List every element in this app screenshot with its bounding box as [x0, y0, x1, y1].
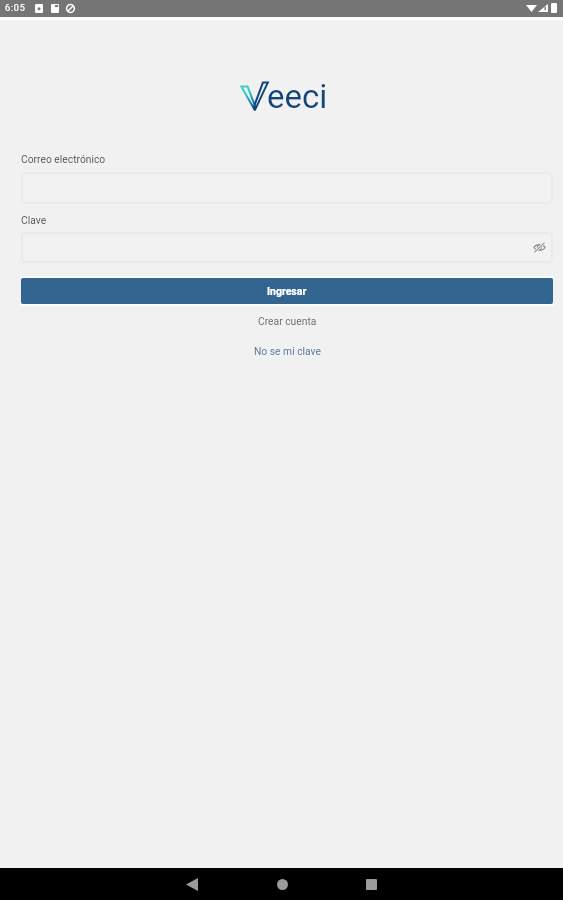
button[interactable]: Mostrar clave — [532, 240, 547, 255]
staticText: Clave — [21, 214, 47, 226]
staticText: Correo electrónico — [21, 153, 106, 165]
button[interactable]: Ingresar — [21, 278, 553, 304]
staticText: 6:05 — [5, 3, 26, 14]
button[interactable]: Mostrar clave — [21, 232, 553, 263]
button[interactable]: Crear cuenta — [21, 312, 553, 330]
staticText: eeci — [267, 77, 328, 116]
staticText: Ingresar — [267, 285, 307, 297]
button[interactable]: Back — [170, 868, 214, 900]
staticText: No se mi clave — [254, 345, 321, 357]
staticText: Crear cuenta — [258, 315, 317, 327]
button[interactable]: Recents — [349, 868, 393, 900]
button[interactable]: No se mi clave — [21, 342, 553, 360]
button[interactable]: Home — [260, 868, 304, 900]
